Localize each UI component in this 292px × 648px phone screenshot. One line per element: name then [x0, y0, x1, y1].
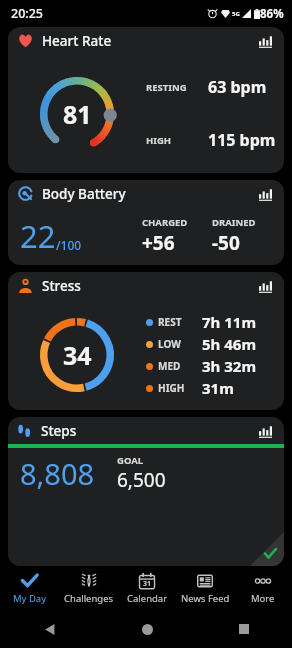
- staticText: Heart Rate: [42, 32, 112, 50]
- staticText: GOAL: [117, 454, 144, 467]
- staticText: DRAINED: [212, 216, 256, 229]
- staticText: 6,500: [117, 467, 166, 493]
- button[interactable]: Stress: [8, 272, 284, 410]
- staticText: 3h 32m: [202, 356, 257, 376]
- button[interactable]: Back: [34, 614, 64, 644]
- button[interactable]: News Feed: [176, 566, 234, 610]
- button[interactable]: Challenges: [59, 566, 118, 610]
- staticText: 81: [63, 97, 92, 131]
- button[interactable]: Home: [132, 614, 162, 644]
- staticText: 31: [143, 579, 152, 589]
- staticText: /100: [56, 237, 82, 253]
- staticText: Body Battery: [42, 185, 126, 203]
- button[interactable]: Recents: [229, 614, 259, 644]
- staticText: LOW: [158, 337, 181, 351]
- staticText: Calendar: [127, 592, 168, 605]
- staticText: News Feed: [181, 592, 230, 605]
- button[interactable]: Stress chart: [254, 275, 276, 297]
- staticText: Steps: [41, 422, 77, 440]
- staticText: 86%: [260, 6, 284, 22]
- staticText: HIGH: [146, 134, 172, 147]
- button[interactable]: Steps chart: [254, 420, 276, 442]
- staticText: HIGH: [158, 381, 185, 395]
- staticText: 7h 11m: [202, 312, 257, 332]
- staticText: 5G: [232, 10, 240, 18]
- button[interactable]: 31: [118, 566, 176, 610]
- staticText: 5h 46m: [202, 334, 257, 354]
- staticText: REST: [158, 315, 182, 329]
- staticText: 20:25: [11, 5, 44, 22]
- staticText: 63 bpm: [208, 76, 267, 98]
- button[interactable]: Heart Rate chart: [254, 30, 276, 52]
- staticText: 115 bpm: [208, 129, 276, 151]
- staticText: 31m: [202, 378, 234, 398]
- staticText: CHARGED: [142, 216, 188, 229]
- staticText: 8,808: [20, 454, 95, 493]
- staticText: +56: [142, 230, 175, 256]
- staticText: 22: [20, 215, 56, 257]
- button[interactable]: Body Battery: [8, 180, 284, 265]
- staticText: RESTING: [146, 81, 187, 94]
- button[interactable]: Heart Rate: [8, 27, 284, 173]
- staticText: My Day: [13, 592, 47, 605]
- staticText: Challenges: [64, 592, 114, 605]
- button[interactable]: Body Battery chart: [254, 183, 276, 205]
- staticText: Stress: [42, 277, 81, 295]
- staticText: -50: [212, 230, 240, 256]
- button[interactable]: More: [234, 566, 292, 610]
- staticText: MED: [158, 359, 181, 373]
- button[interactable]: My Day: [0, 566, 59, 610]
- staticText: 34: [63, 338, 92, 372]
- button[interactable]: Steps: [8, 417, 284, 566]
- staticText: More: [251, 592, 275, 605]
